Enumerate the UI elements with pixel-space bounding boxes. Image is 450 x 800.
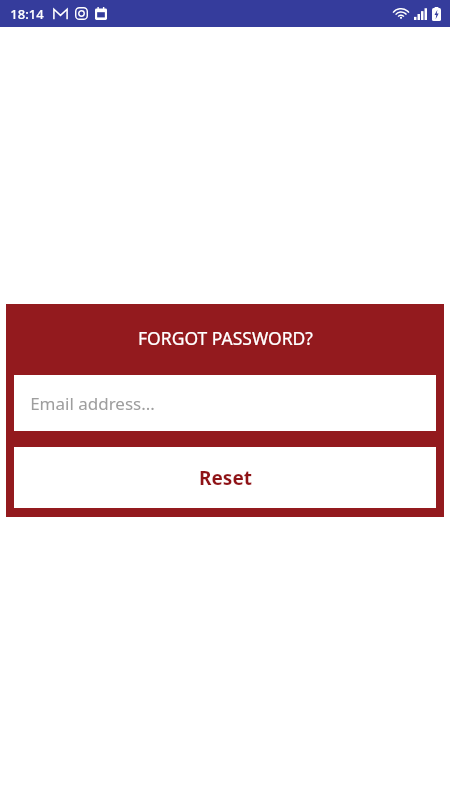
button[interactable]: Reset — [14, 447, 436, 508]
staticText: FORGOT PASSWORD? — [138, 326, 313, 350]
other: Mobile signal — [414, 8, 427, 20]
other: Gmail notification — [53, 8, 68, 20]
staticText: Reset — [199, 465, 252, 491]
other: Battery charging — [432, 7, 441, 21]
button[interactable]: Email address... — [14, 375, 436, 431]
other: Wi-Fi — [393, 8, 409, 20]
other: Calendar notification — [95, 7, 107, 20]
staticText: 18:14 — [10, 5, 44, 23]
staticText: Email address... — [30, 392, 155, 415]
other: Instagram notification — [75, 7, 88, 20]
